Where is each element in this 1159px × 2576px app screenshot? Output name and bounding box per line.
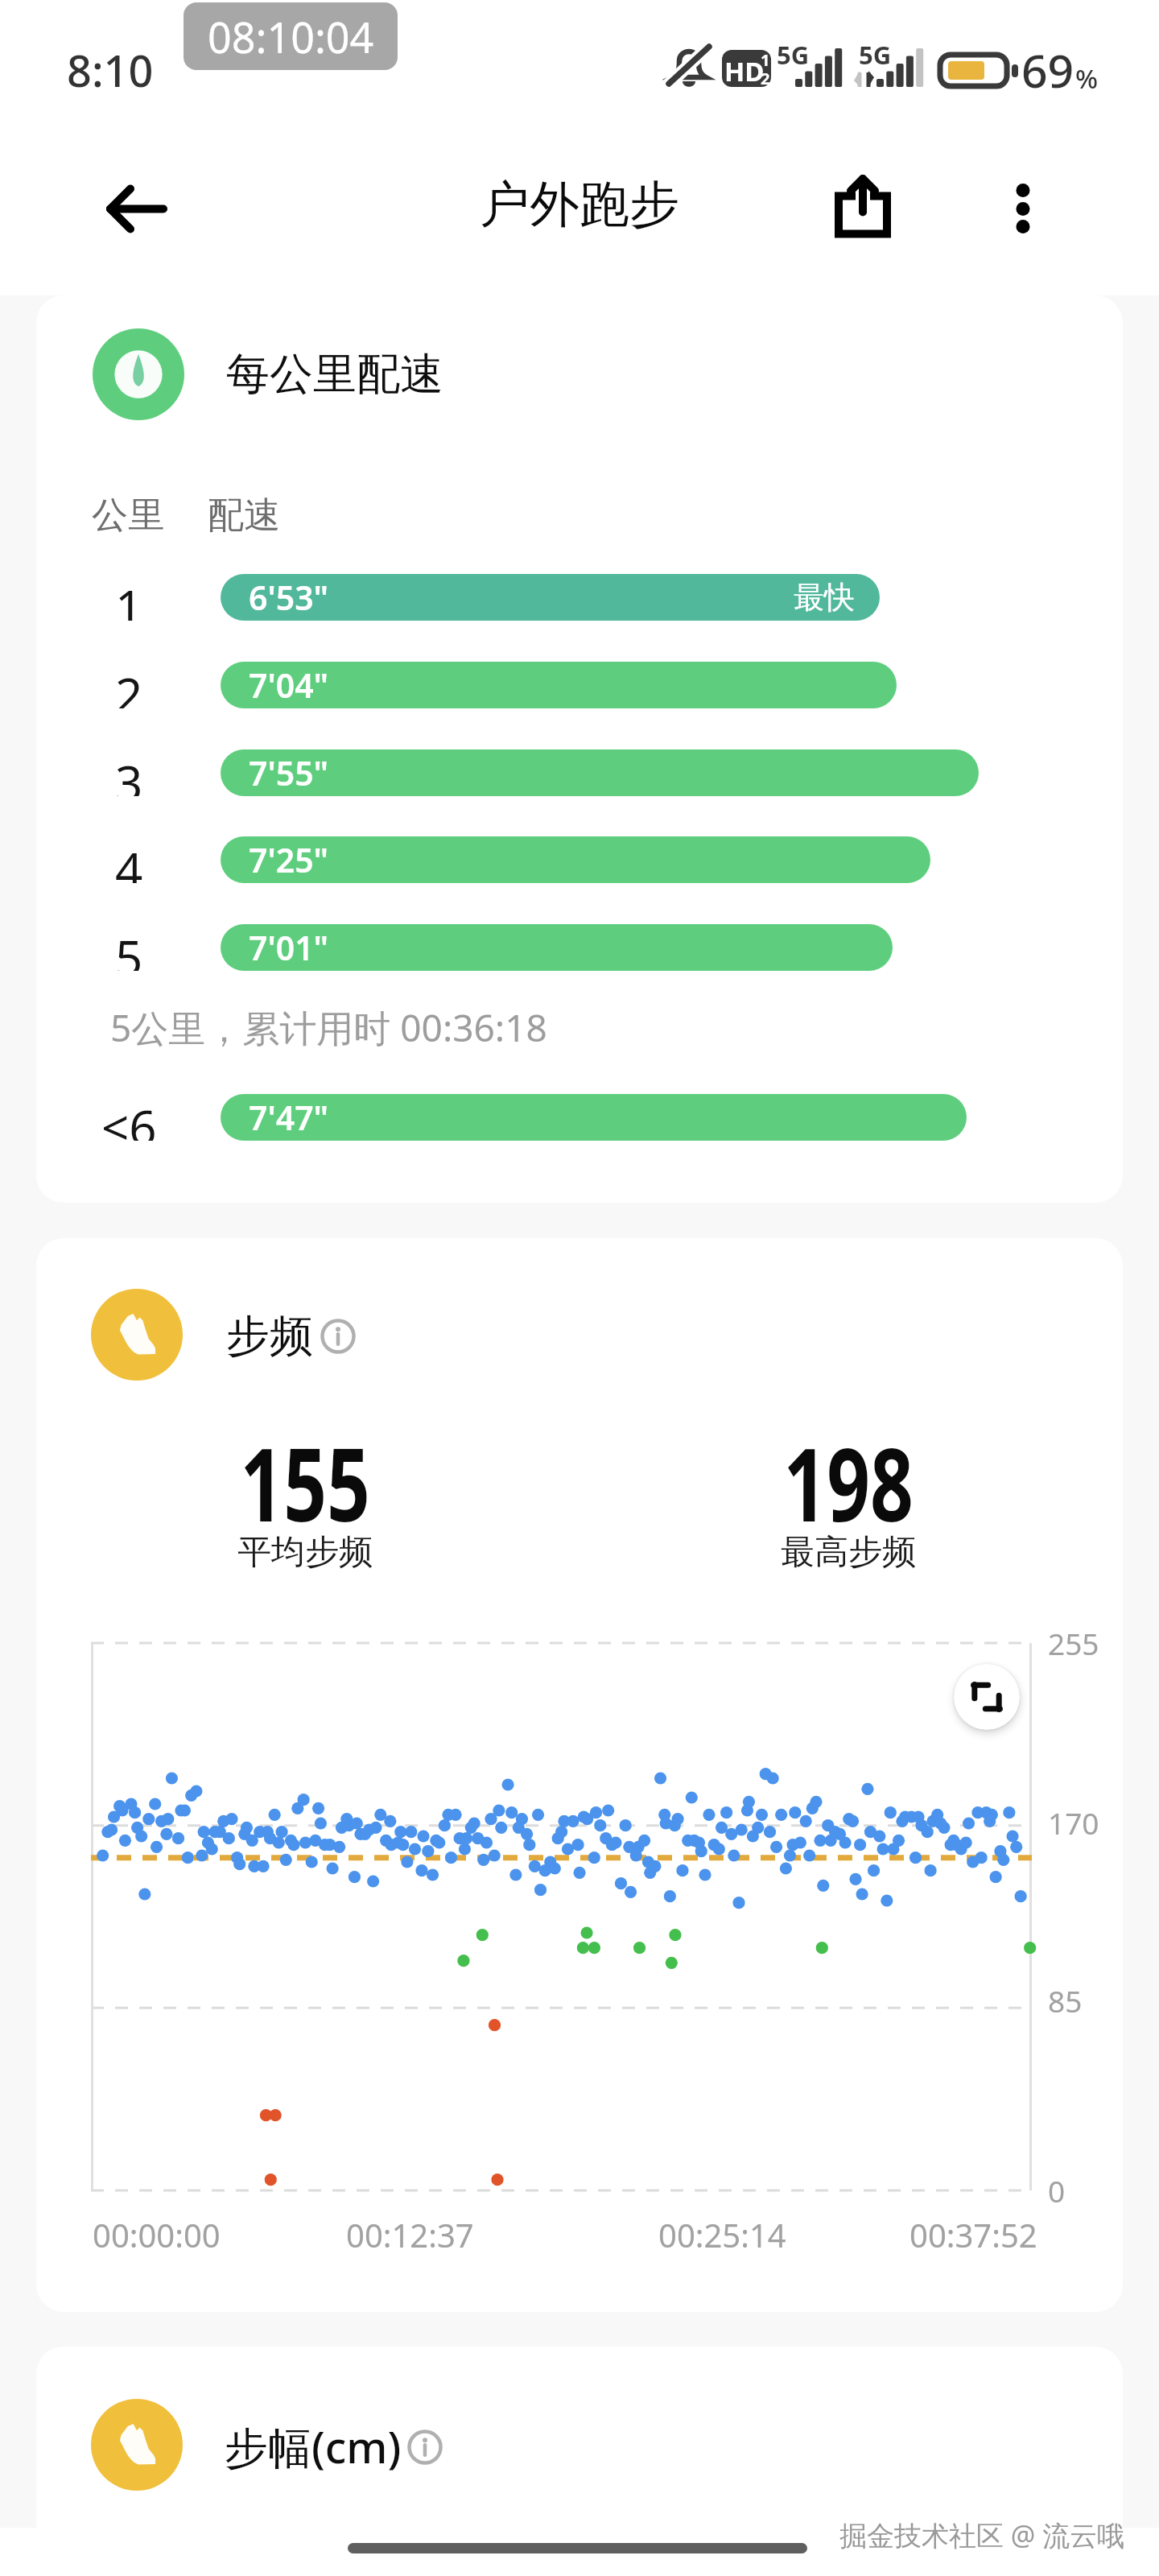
staticText: 7'47" (249, 1095, 329, 1140)
staticText: <6 (101, 1094, 157, 1141)
staticText: 155 (240, 1413, 371, 1551)
staticText: 00:00:00 (93, 2213, 221, 2256)
button[interactable]: Cadence info (320, 1319, 356, 1354)
staticText: HD (724, 53, 765, 89)
staticText: 0 (1048, 2170, 1066, 2211)
staticText: 00:12:37 (346, 2213, 474, 2256)
staticText: 最高步频 (781, 1531, 916, 1574)
staticText: 每公里配速 (226, 347, 443, 402)
staticText: 步幅(cm) (225, 2417, 402, 2476)
staticText: 6'53" (249, 575, 329, 620)
button[interactable]: More options (983, 164, 1063, 245)
staticText: 1 (115, 574, 143, 621)
staticText: 平均步频 (237, 1531, 373, 1574)
button[interactable]: 4 (36, 836, 1123, 883)
staticText: 7'01" (249, 925, 329, 970)
staticText: 00:25:14 (658, 2213, 786, 2256)
button[interactable]: 3 (36, 749, 1123, 796)
staticText: 255 (1048, 1623, 1099, 1663)
staticText: 公里 (92, 493, 164, 539)
staticText: 配速 (208, 493, 280, 539)
staticText: 最快 (794, 578, 855, 617)
button[interactable]: 1 (36, 574, 1123, 621)
staticText: 3 (115, 749, 143, 796)
staticText: 7'25" (249, 837, 329, 882)
staticText: 步频 (226, 1309, 313, 1364)
button[interactable]: Fullscreen chart (954, 1664, 1020, 1730)
staticText: 5G (859, 38, 892, 72)
button[interactable]: Stride info (407, 2429, 443, 2465)
staticText: 170 (1048, 1802, 1099, 1843)
staticText: 198 (783, 1413, 914, 1551)
button[interactable]: 步幅(cm) (36, 2392, 1123, 2497)
staticText: 1 (761, 49, 770, 71)
staticText: 85 (1048, 1980, 1083, 2021)
staticText: 5公里，累计用时 00:36:18 (110, 1002, 547, 1053)
button[interactable]: <6 (36, 1094, 1123, 1141)
staticText: 8:10 (67, 40, 154, 100)
button[interactable]: 步频 (36, 1282, 1123, 1387)
button[interactable]: 2 (36, 662, 1123, 708)
staticText: % (1075, 60, 1099, 97)
staticText: 7'04" (249, 663, 329, 708)
button[interactable]: Share (823, 164, 903, 245)
staticText: 5G (777, 38, 810, 72)
staticText: 掘金技术社区 @ 流云哦 (839, 2516, 1125, 2553)
staticText: 7'55" (249, 750, 329, 795)
button[interactable] (36, 322, 1123, 427)
staticText: 户外跑步 (480, 173, 679, 236)
staticText: 69 (1021, 39, 1074, 101)
staticText: 4 (115, 836, 143, 883)
button[interactable]: Back (84, 151, 190, 258)
staticText: 2 (761, 68, 770, 89)
staticText: 5 (115, 924, 143, 971)
staticText: 00:37:52 (909, 2213, 1037, 2256)
staticText: 2 (115, 662, 143, 708)
button[interactable]: 5 (36, 924, 1123, 971)
staticText: 08:10:04 (208, 8, 374, 65)
